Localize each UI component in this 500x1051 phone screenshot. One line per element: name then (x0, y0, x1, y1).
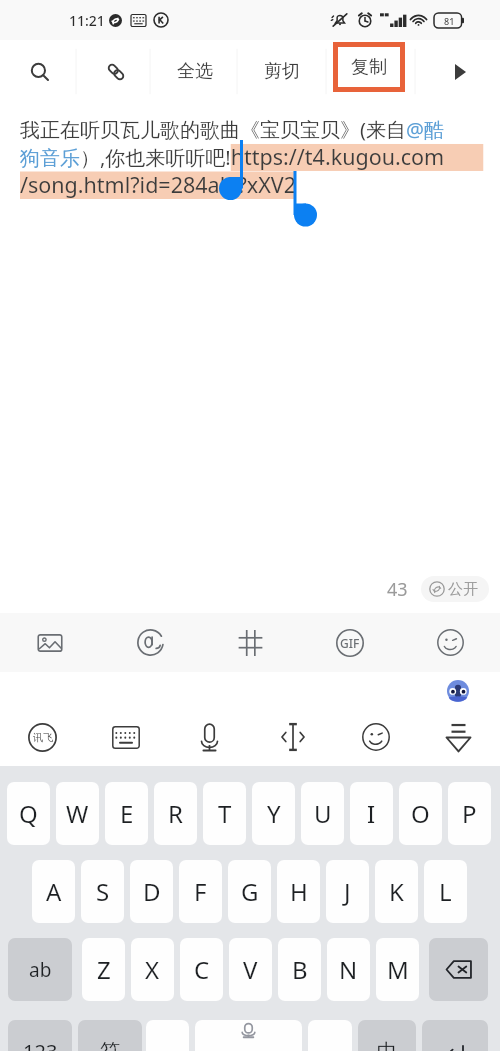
staticText: F (194, 875, 207, 908)
button[interactable]: V (229, 938, 272, 1001)
button[interactable]: GIF (300, 613, 400, 672)
staticText: M (387, 953, 409, 986)
button[interactable]: M (376, 938, 419, 1001)
staticText: T (218, 797, 232, 830)
staticText: 复制 (351, 56, 387, 79)
button[interactable]: IME (0, 708, 84, 766)
button[interactable]: Y (252, 782, 295, 845)
button[interactable]: Backspace (429, 938, 488, 1001)
button[interactable]: 全选 (153, 40, 237, 103)
button[interactable]: N (327, 938, 370, 1001)
staticText: A (46, 875, 62, 908)
button[interactable]: Mention (100, 613, 200, 672)
button[interactable]: X (131, 938, 174, 1001)
button[interactable]: P (448, 782, 491, 845)
staticText: E (120, 797, 134, 830)
staticText: 43 (387, 577, 408, 602)
staticText: N (339, 953, 358, 986)
button[interactable]: Emoji (400, 613, 500, 672)
button[interactable]: ， (146, 1020, 189, 1051)
staticText: L (439, 875, 452, 908)
staticText: 我正在听贝瓦儿歌的歌曲《宝贝宝贝》(来自@酷 狗音乐）,你也来听听吧!https… (20, 116, 484, 199)
staticText: I (367, 797, 376, 830)
button[interactable]: Link (79, 40, 153, 103)
staticText: 81 (444, 15, 455, 27)
button[interactable]: Q (7, 782, 50, 845)
staticText: 中 (377, 1039, 397, 1051)
button[interactable]: Hide keyboard (417, 708, 500, 766)
staticText: 公开 (448, 580, 478, 599)
staticText: J (344, 875, 351, 908)
button[interactable]: Sticker (447, 680, 469, 702)
button[interactable]: D (130, 860, 173, 923)
button[interactable]: 中 (358, 1020, 416, 1051)
button[interactable]: E (105, 782, 148, 845)
button[interactable]: Search (0, 40, 79, 103)
button[interactable]: 。 (308, 1020, 352, 1051)
staticText: P (462, 797, 477, 830)
staticText: 讯飞 (33, 731, 53, 744)
button[interactable]: More (420, 40, 500, 103)
button[interactable]: G (228, 860, 271, 923)
staticText: Q (19, 797, 38, 830)
button[interactable]: Z (82, 938, 125, 1001)
button[interactable]: R (154, 782, 197, 845)
button[interactable]: I (350, 782, 393, 845)
staticText: Z (97, 953, 111, 986)
button[interactable]: 剪切 (237, 40, 326, 103)
staticText: U (314, 797, 332, 830)
staticText: W (66, 797, 89, 830)
staticText: B (292, 953, 308, 986)
button[interactable]: W (56, 782, 99, 845)
button[interactable]: J (326, 860, 369, 923)
staticText: 123 (23, 1038, 58, 1051)
button[interactable]: F (179, 860, 222, 923)
button[interactable]: O (399, 782, 442, 845)
staticText: V (243, 953, 258, 986)
button[interactable]: L (424, 860, 467, 923)
button[interactable]: U (301, 782, 344, 845)
button[interactable]: K (375, 860, 418, 923)
button[interactable]: ab (8, 938, 72, 1001)
button[interactable]: Photo (0, 613, 100, 672)
button[interactable]: T (203, 782, 246, 845)
staticText: K (389, 875, 404, 908)
button[interactable]: A (32, 860, 75, 923)
button[interactable]: Cursor (251, 708, 334, 766)
staticText: X (145, 953, 160, 986)
staticText: GIF (340, 635, 360, 651)
button[interactable]: C (180, 938, 223, 1001)
button[interactable]: Keyboard (84, 708, 168, 766)
button[interactable]: Emoji (334, 708, 417, 766)
staticText: 11:21 (69, 11, 105, 30)
staticText: H (290, 875, 308, 908)
staticText: 全选 (177, 60, 213, 83)
button[interactable]: Enter (422, 1020, 488, 1051)
button[interactable]: H (277, 860, 320, 923)
button[interactable]: S (81, 860, 124, 923)
staticText: 剪切 (264, 60, 300, 83)
staticText: C (194, 953, 210, 986)
staticText: S (96, 875, 110, 908)
button[interactable]: Voice (168, 708, 251, 766)
button[interactable]: 123 (8, 1020, 72, 1051)
staticText: ab (29, 957, 52, 983)
staticText: R (168, 797, 183, 830)
button[interactable]: B (278, 938, 321, 1001)
staticText: 符 (100, 1039, 120, 1051)
button[interactable]: Topic (200, 613, 300, 672)
button[interactable]: Space (195, 1020, 302, 1051)
button[interactable]: 公开 (421, 576, 489, 602)
staticText: O (411, 797, 430, 830)
button[interactable]: 符 (78, 1020, 142, 1051)
staticText: Y (267, 797, 281, 830)
staticText: G (241, 875, 259, 908)
button[interactable]: 复制 (338, 47, 400, 87)
staticText: D (143, 875, 161, 908)
